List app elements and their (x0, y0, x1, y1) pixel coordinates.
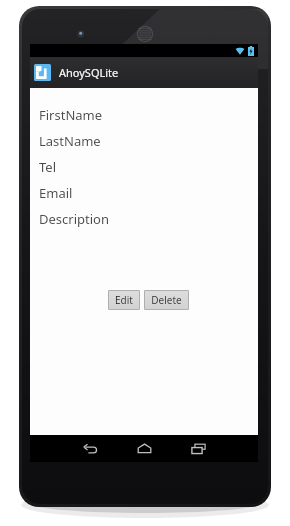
staticText: Email (39, 184, 73, 202)
button[interactable]: LastName (39, 128, 258, 154)
button[interactable]: Back (73, 435, 107, 462)
button[interactable]: Email (39, 180, 258, 206)
staticText: FirstName (39, 106, 103, 124)
staticText: LastName (39, 132, 101, 150)
button[interactable]: Home (127, 435, 161, 462)
button[interactable]: Edit (108, 290, 140, 310)
staticText: Edit (115, 293, 133, 307)
button[interactable]: Delete (144, 290, 189, 310)
staticText: Delete (151, 293, 182, 307)
button[interactable]: FirstName (39, 102, 258, 128)
staticText: Tel (39, 158, 57, 176)
staticText: AhoySQLite (59, 65, 119, 80)
button[interactable]: Description (39, 206, 258, 232)
button[interactable]: Recent apps (181, 435, 215, 462)
staticText: Description (39, 210, 109, 228)
button[interactable]: Tel (39, 154, 258, 180)
